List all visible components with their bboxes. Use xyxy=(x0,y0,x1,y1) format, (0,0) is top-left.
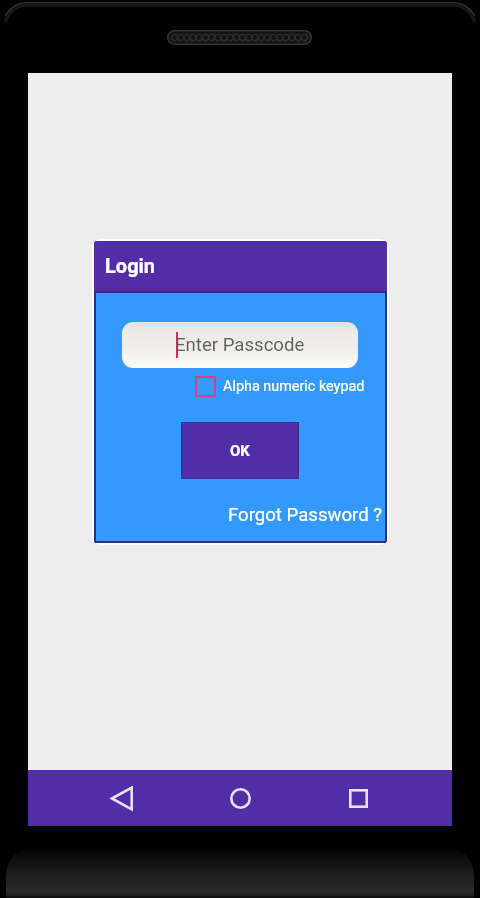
staticText: Login xyxy=(105,254,156,277)
button[interactable]: Alpha numeric keypad xyxy=(195,376,365,397)
button[interactable]: Enter Passcode xyxy=(122,322,358,368)
button[interactable]: Recent apps xyxy=(334,774,382,822)
button[interactable]: Back xyxy=(98,774,146,822)
staticText: Enter Passcode xyxy=(175,334,305,356)
button[interactable]: Forgot Password ? xyxy=(228,504,383,526)
button[interactable]: OK xyxy=(182,423,298,478)
button[interactable]: Home xyxy=(216,774,264,822)
staticText: OK xyxy=(230,442,250,460)
staticText: Alpha numeric keypad xyxy=(223,378,365,395)
